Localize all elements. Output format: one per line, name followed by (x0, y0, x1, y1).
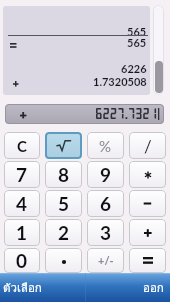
button[interactable]: 5 (45, 190, 82, 217)
button[interactable] (129, 161, 166, 188)
staticText: 8 (58, 163, 70, 186)
staticText: 5 (58, 192, 70, 215)
staticText: 9 (100, 163, 112, 186)
staticText: 7 (16, 163, 28, 186)
staticText: / (144, 136, 152, 156)
button[interactable]: 3 (87, 219, 124, 246)
staticText: 1.7320508 (93, 75, 147, 88)
staticText: 0 (16, 249, 28, 272)
staticText: 2 (58, 221, 70, 244)
staticText: 565 (127, 36, 147, 49)
staticText: 6226 (121, 62, 147, 75)
button[interactable] (45, 248, 82, 273)
button[interactable]: 2 (45, 219, 82, 246)
button[interactable] (129, 190, 166, 217)
button[interactable]: 1 (4, 219, 40, 246)
button[interactable] (45, 132, 82, 159)
button[interactable]: 6 (87, 190, 124, 217)
button[interactable]: C (4, 132, 40, 159)
button[interactable]: 7 (4, 161, 40, 188)
staticText: 3 (100, 221, 112, 244)
button[interactable]: 8 (45, 161, 82, 188)
button[interactable]: 0 (4, 248, 40, 273)
staticText: +/- (98, 254, 114, 267)
button[interactable] (129, 248, 166, 273)
button[interactable]: ออก (133, 277, 170, 299)
button[interactable]: 9 (87, 161, 124, 188)
staticText: 1 (16, 221, 28, 244)
button[interactable]: 4 (4, 190, 40, 217)
button[interactable]: +/- (87, 248, 124, 273)
staticText: ตัวเลือก (3, 279, 42, 297)
button[interactable]: % (87, 132, 124, 159)
button[interactable]: / (129, 132, 166, 159)
button[interactable] (129, 219, 166, 246)
staticText: 565 (127, 25, 147, 38)
staticText: 6 (100, 192, 112, 215)
staticText: C (17, 137, 27, 155)
staticText: ออก (143, 279, 164, 297)
staticText: % (99, 137, 112, 155)
staticText: 4 (16, 192, 28, 215)
button[interactable]: ตัวเลือก (0, 277, 52, 299)
